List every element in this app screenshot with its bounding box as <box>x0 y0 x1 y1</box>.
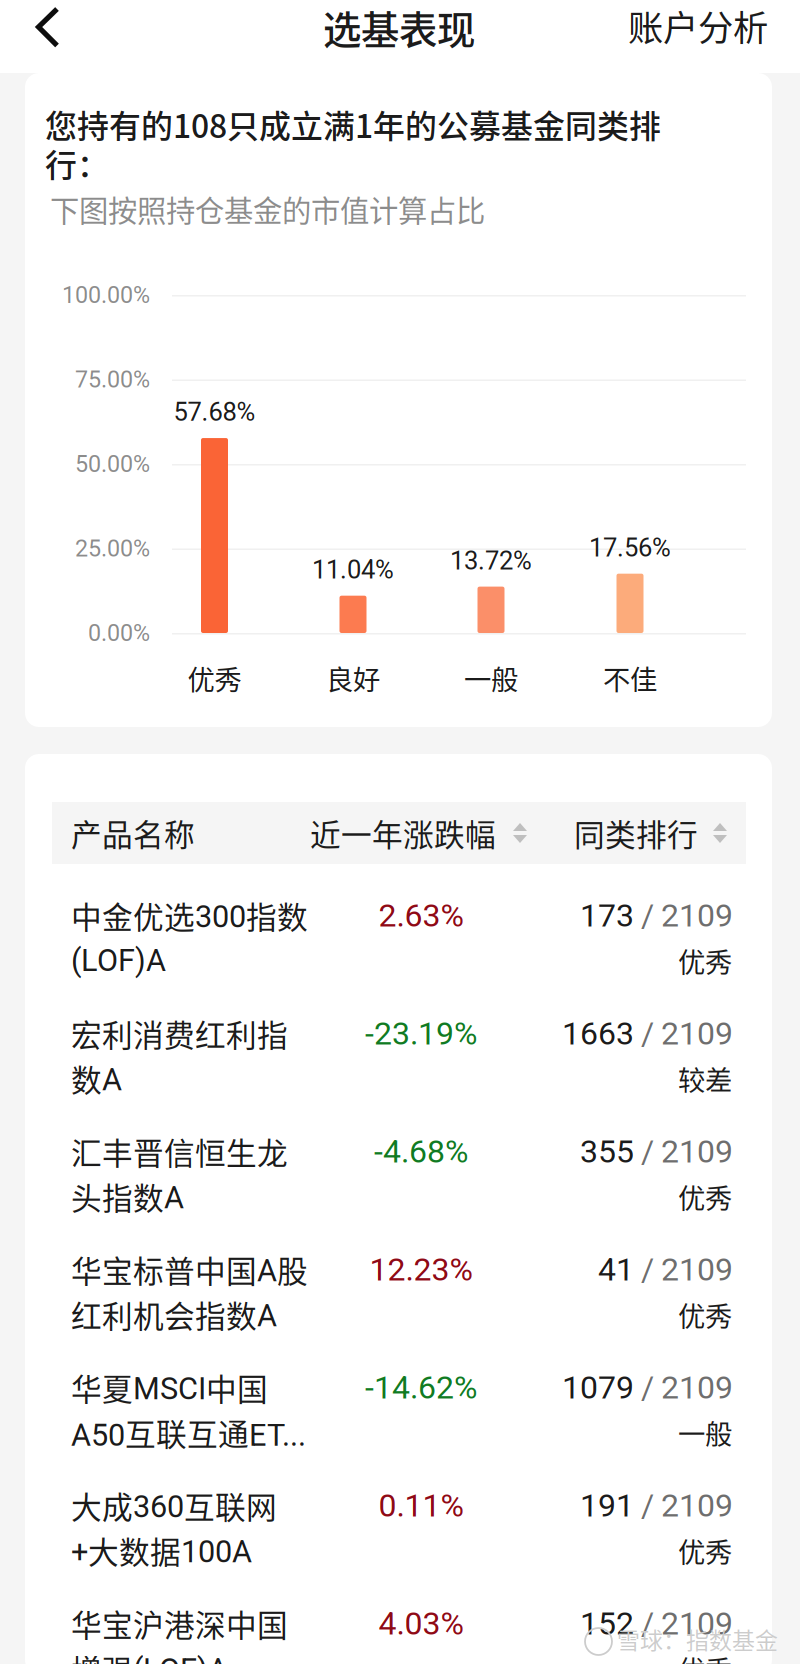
staticText: 近一年涨跌幅 <box>310 811 496 855</box>
staticText: 1079 <box>562 1369 634 1406</box>
staticText: 雪球：指数基金 <box>617 1622 778 1656</box>
staticText: 41 <box>598 1251 634 1288</box>
button[interactable]: 返回 <box>0 0 96 73</box>
staticText: 华宝标普中国A股 <box>71 1247 308 1292</box>
button[interactable]: 华宝沪港深中国 <box>0 1601 800 1664</box>
staticText: 13.72% <box>450 546 532 576</box>
staticText: 2109 <box>661 1369 733 1406</box>
staticText: / <box>641 1133 654 1170</box>
staticText: 产品名称 <box>71 811 195 855</box>
staticText: / <box>641 1015 654 1052</box>
staticText: 红利机会指数A <box>71 1292 277 1337</box>
staticText: / <box>641 897 654 934</box>
staticText: 数A <box>71 1056 122 1101</box>
staticText: 头指数A <box>71 1174 184 1219</box>
staticText: 2109 <box>661 1487 733 1524</box>
staticText: 75.00% <box>75 366 150 393</box>
staticText: 12.23% <box>369 1251 472 1288</box>
button[interactable]: 华夏MSCI中国 <box>0 1365 800 1483</box>
staticText: 优秀 <box>678 1531 732 1570</box>
staticText: 同类排行 <box>574 811 698 855</box>
staticText: 优秀 <box>678 941 732 980</box>
button[interactable]: 中金优选300指数 <box>0 893 800 1011</box>
staticText: 您持有的108只成立满1年的公募基金同类排 <box>45 101 661 147</box>
staticText: 152 <box>580 1605 634 1642</box>
staticText: 2.63% <box>378 897 463 934</box>
staticText: 1663 <box>562 1015 634 1052</box>
staticText: 2109 <box>661 1133 733 1170</box>
staticText: / <box>641 1369 654 1406</box>
button[interactable]: 汇丰晋信恒生龙 <box>0 1129 800 1247</box>
staticText: 下图按照持仓基金的市值计算占比 <box>50 188 485 230</box>
staticText: 增强(LOF)A <box>71 1646 228 1664</box>
staticText: -4.68% <box>374 1133 468 1170</box>
staticText: 2109 <box>661 1605 733 1642</box>
staticText: 0.00% <box>88 619 150 647</box>
staticText: 100.00% <box>62 281 150 309</box>
staticText: 173 <box>580 897 634 934</box>
staticText: (LOF)A <box>71 942 166 978</box>
staticText: 355 <box>580 1133 634 1170</box>
staticText: 汇丰晋信恒生龙 <box>71 1129 288 1174</box>
staticText: 优秀 <box>678 1649 732 1664</box>
staticText: 4.03% <box>378 1605 463 1642</box>
staticText: A50互联互通ET... <box>71 1410 306 1455</box>
staticText: 优秀 <box>187 658 241 698</box>
staticText: / <box>641 1487 654 1524</box>
staticText: 17.56% <box>589 533 671 563</box>
button[interactable]: 华宝标普中国A股 <box>0 1247 800 1365</box>
staticText: 50.00% <box>75 450 150 478</box>
staticText: 行： <box>45 140 109 186</box>
staticText: -23.19% <box>365 1015 477 1052</box>
staticText: 一般 <box>464 658 518 698</box>
staticText: 优秀 <box>678 1295 732 1334</box>
staticText: 较差 <box>678 1059 732 1098</box>
staticText: 57.68% <box>173 397 255 427</box>
staticText: 不佳 <box>603 658 657 698</box>
staticText: 2109 <box>661 1015 733 1052</box>
staticText: 中金优选300指数 <box>71 893 308 938</box>
staticText: 华夏MSCI中国 <box>71 1365 268 1410</box>
staticText: 0.11% <box>378 1487 463 1524</box>
staticText: 宏利消费红利指 <box>71 1011 288 1056</box>
staticText: 选基表现 <box>323 0 475 55</box>
staticText: 优秀 <box>678 1177 732 1216</box>
staticText: 2109 <box>661 897 733 934</box>
button[interactable]: 账户分析 <box>610 0 786 62</box>
staticText: 2109 <box>661 1251 733 1288</box>
staticText: 华宝沪港深中国 <box>71 1601 288 1646</box>
button[interactable]: 大成360互联网 <box>0 1483 800 1601</box>
button[interactable]: 同类排行 <box>574 802 742 864</box>
staticText: / <box>641 1605 654 1642</box>
staticText: -14.62% <box>365 1369 477 1406</box>
button[interactable]: 宏利消费红利指 <box>0 1011 800 1129</box>
button[interactable]: 产品名称 <box>71 802 231 864</box>
staticText: 良好 <box>326 658 380 698</box>
staticText: 11.04% <box>312 555 394 585</box>
button[interactable]: 近一年涨跌幅 <box>310 802 538 864</box>
staticText: +大数据100A <box>71 1528 252 1573</box>
staticText: 25.00% <box>75 535 150 562</box>
staticText: 一般 <box>678 1413 732 1452</box>
staticText: 191 <box>580 1487 634 1524</box>
staticText: 账户分析 <box>628 0 768 51</box>
staticText: 大成360互联网 <box>71 1483 277 1528</box>
staticText: / <box>641 1251 654 1288</box>
